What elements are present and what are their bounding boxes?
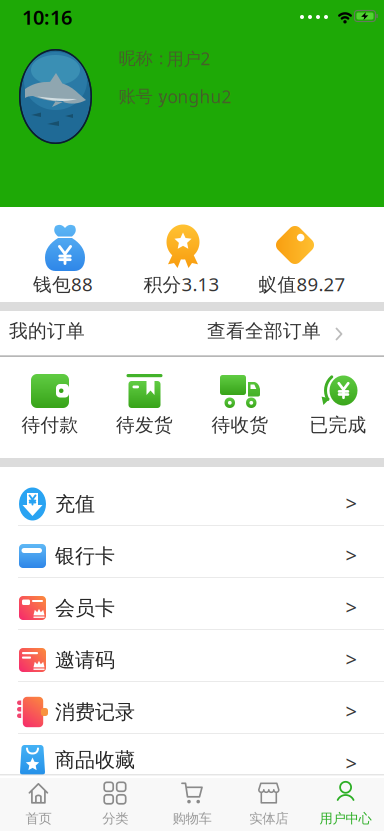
staticText: > [345, 542, 356, 568]
staticText: 钱包88 [33, 272, 93, 296]
staticText: 查看全部订单 [207, 319, 321, 342]
staticText: > [345, 646, 356, 672]
staticText: 充值 [55, 492, 95, 516]
staticText: > [345, 750, 356, 776]
staticText: 用户中心 [320, 810, 372, 827]
staticText: 账号： [118, 86, 169, 107]
staticText: yonghu2 [158, 85, 231, 108]
staticText: 会员卡 [55, 596, 115, 620]
staticText: 待收货 [211, 413, 268, 436]
staticText: 邀请码 [55, 648, 115, 672]
staticText: 分类 [102, 810, 128, 827]
staticText: > [345, 594, 356, 620]
staticText: 昵称： [118, 48, 169, 69]
staticText: > [345, 490, 356, 516]
staticText: 消费记录 [55, 700, 135, 724]
staticText: 待付款 [21, 413, 78, 436]
staticText: 购物车 [172, 810, 211, 827]
staticText: 待发货 [116, 413, 173, 436]
staticText: 用户2 [166, 47, 210, 70]
staticText: 已完成 [309, 413, 366, 436]
staticText: 商品收藏 [55, 748, 135, 772]
staticText: > [345, 698, 356, 724]
staticText: 首页 [25, 810, 51, 827]
staticText: 积分3.13 [143, 272, 219, 296]
staticText: 蚁值89.27 [258, 272, 345, 296]
staticText: 实体店 [249, 810, 288, 827]
staticText: 银行卡 [55, 544, 115, 568]
staticText: 我的订单 [9, 319, 85, 342]
staticText: 10:16 [22, 4, 72, 30]
